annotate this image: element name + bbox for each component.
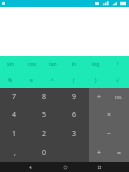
button[interactable]: 7 bbox=[0, 88, 29, 106]
staticText: 6 bbox=[72, 110, 77, 120]
staticText: cos bbox=[28, 61, 36, 68]
staticText: + bbox=[97, 148, 102, 158]
button[interactable]: 8 bbox=[29, 88, 59, 106]
button[interactable]: tan bbox=[42, 56, 63, 72]
staticText: 0 bbox=[42, 148, 47, 158]
button[interactable]: + bbox=[89, 143, 109, 162]
button[interactable]: log bbox=[85, 56, 107, 72]
staticText: 5 bbox=[42, 110, 47, 120]
button[interactable]: ( bbox=[63, 72, 85, 88]
staticText: 3 bbox=[72, 129, 77, 139]
staticText: = bbox=[117, 148, 122, 158]
button[interactable]: √ bbox=[107, 72, 129, 88]
staticText: 1 bbox=[12, 129, 17, 139]
staticText: ) bbox=[95, 77, 97, 84]
button[interactable]: = bbox=[109, 143, 129, 162]
staticText: 2 bbox=[42, 129, 47, 139]
staticText: e bbox=[30, 77, 33, 84]
staticText: % bbox=[8, 77, 13, 84]
button[interactable]: Home bbox=[60, 162, 70, 172]
button[interactable]: 4 bbox=[0, 106, 29, 124]
button[interactable]: ÷ bbox=[89, 88, 109, 106]
staticText: DEL bbox=[115, 95, 123, 100]
staticText: − bbox=[107, 129, 112, 139]
staticText: tan bbox=[49, 61, 57, 68]
button[interactable]: Back bbox=[25, 162, 35, 172]
button[interactable]: 3 bbox=[59, 124, 89, 143]
staticText: ÷ bbox=[97, 92, 102, 102]
button[interactable]: ) bbox=[85, 72, 107, 88]
button[interactable]: 5 bbox=[29, 106, 59, 124]
button[interactable]: % bbox=[0, 72, 21, 88]
staticText: sin bbox=[7, 61, 14, 68]
button[interactable]: − bbox=[89, 124, 129, 143]
staticText: ln bbox=[72, 61, 77, 68]
button[interactable]: × bbox=[89, 106, 129, 124]
staticText: × bbox=[107, 110, 112, 120]
button[interactable]: cos bbox=[21, 56, 42, 72]
button[interactable]: ^ bbox=[42, 72, 63, 88]
staticText: ( bbox=[73, 77, 75, 84]
button[interactable]: sin bbox=[0, 56, 21, 72]
button[interactable]: ! bbox=[107, 56, 129, 72]
button[interactable]: 6 bbox=[59, 106, 89, 124]
staticText: 7 bbox=[12, 92, 17, 102]
staticText: 4 bbox=[12, 110, 17, 120]
button[interactable]: 9 bbox=[59, 88, 89, 106]
staticText: √ bbox=[116, 77, 120, 83]
staticText: ! bbox=[117, 61, 119, 68]
button[interactable]: 2 bbox=[29, 124, 59, 143]
staticText: 8 bbox=[42, 92, 47, 102]
button[interactable]: , bbox=[0, 143, 29, 162]
staticText: , bbox=[14, 148, 16, 158]
button[interactable]: 0 bbox=[29, 143, 59, 162]
staticText: ^ bbox=[51, 77, 54, 84]
button[interactable]: 1 bbox=[0, 124, 29, 143]
button[interactable]: ln bbox=[63, 56, 85, 72]
button[interactable]: Recent apps bbox=[94, 162, 104, 172]
button[interactable]: DEL bbox=[109, 88, 129, 106]
staticText: log bbox=[92, 61, 100, 68]
button[interactable]: e bbox=[21, 72, 42, 88]
staticText: 9 bbox=[72, 92, 77, 102]
